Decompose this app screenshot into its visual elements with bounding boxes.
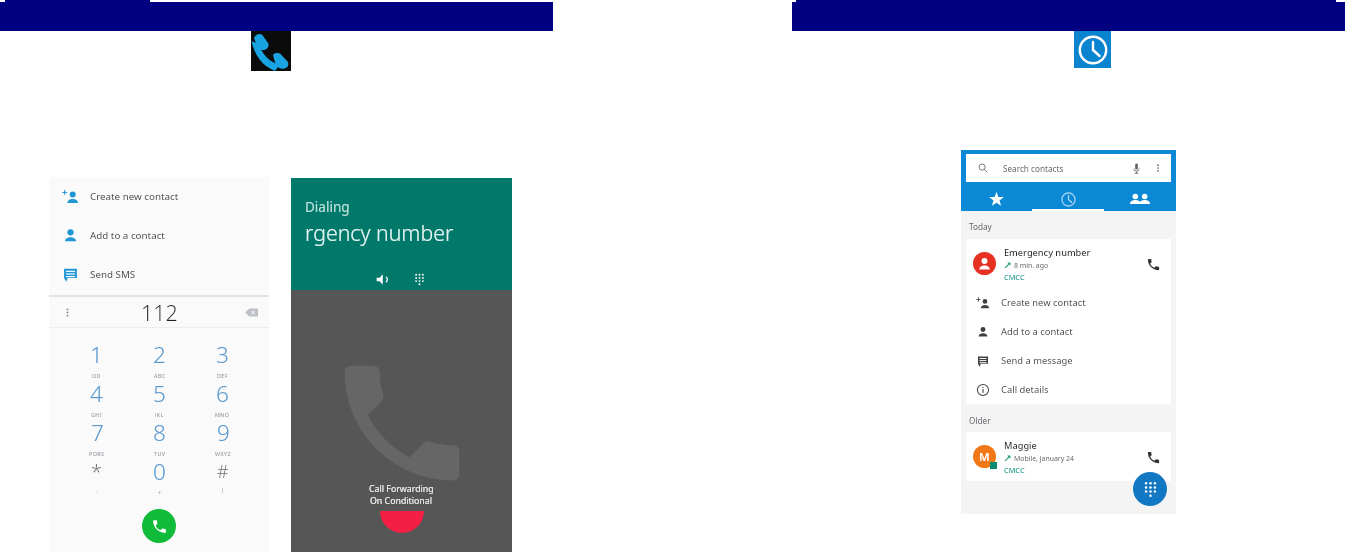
staticText: GHI xyxy=(91,411,102,417)
button[interactable]: 3 xyxy=(191,341,254,380)
staticText: M xyxy=(979,449,990,465)
staticText: Send a message xyxy=(1001,354,1073,367)
button[interactable]: Search contacts xyxy=(966,154,1171,182)
staticText: 2 xyxy=(153,339,166,370)
staticText: 1 xyxy=(90,339,103,370)
staticText: MNO xyxy=(215,411,230,417)
staticText: Call Forwarding xyxy=(369,483,434,495)
staticText: 112 xyxy=(141,298,178,327)
staticText: TUV xyxy=(154,450,166,456)
staticText: Maggie xyxy=(1004,439,1037,452)
staticText: On Conditional xyxy=(370,495,433,507)
staticText: Search contacts xyxy=(1003,163,1131,174)
staticText: Create new contact xyxy=(90,190,179,203)
staticText: Call details xyxy=(1001,383,1049,396)
button[interactable]: Emergency number xyxy=(966,239,1171,288)
button[interactable]: 2 xyxy=(128,341,191,380)
staticText: ABC xyxy=(154,372,166,378)
button[interactable]: 7 xyxy=(65,419,128,458)
button[interactable]: 4 xyxy=(65,380,128,419)
staticText: 9 xyxy=(217,417,230,448)
staticText: Create new contact xyxy=(1001,296,1086,309)
button[interactable]: Speaker xyxy=(371,268,393,290)
staticText: 3 xyxy=(216,339,229,370)
button[interactable]: M xyxy=(966,432,1171,481)
staticText: Add to a contact xyxy=(90,229,165,242)
button[interactable]: 9 xyxy=(191,419,254,458)
button[interactable]: More options xyxy=(49,297,85,327)
staticText: 7 xyxy=(91,417,104,448)
staticText: 0 xyxy=(153,456,166,487)
staticText: rgency number xyxy=(305,218,454,247)
button[interactable]: Open dialpad xyxy=(1133,472,1167,506)
staticText: Emergency number xyxy=(1004,246,1091,259)
staticText: WXYZ xyxy=(215,450,231,456)
button[interactable]: Create new contact xyxy=(966,288,1171,317)
staticText: + xyxy=(158,489,162,495)
button[interactable]: Contacts xyxy=(1104,187,1176,211)
staticText: Older xyxy=(969,415,991,426)
button[interactable]: 0 xyxy=(128,458,191,497)
staticText: | xyxy=(221,486,225,493)
staticText: 5 xyxy=(153,378,166,409)
button[interactable]: Add to a contact xyxy=(49,216,269,255)
staticText: 4 xyxy=(90,378,103,409)
staticText: 8 min. ago xyxy=(1014,261,1049,270)
button[interactable]: Send a message xyxy=(966,346,1171,375)
button[interactable]: End call xyxy=(380,511,424,529)
staticText: # xyxy=(217,459,229,484)
button[interactable]: 1 xyxy=(65,341,128,380)
staticText: DEF xyxy=(217,372,228,378)
button[interactable]: Recents xyxy=(1032,187,1104,211)
staticText: . xyxy=(96,487,98,494)
button[interactable]: 5 xyxy=(128,380,191,419)
staticText: JKL xyxy=(155,411,164,417)
button[interactable]: Call back xyxy=(1139,250,1167,278)
staticText: * xyxy=(91,458,103,485)
button[interactable]: Create new contact xyxy=(49,177,269,216)
staticText: Today xyxy=(969,221,992,232)
button[interactable]: # xyxy=(191,458,254,497)
staticText: Mobile, January 24 xyxy=(1014,454,1074,463)
button[interactable]: 6 xyxy=(191,380,254,419)
button[interactable]: Call xyxy=(142,509,176,543)
staticText: CMCC xyxy=(1004,465,1025,475)
staticText: Send SMS xyxy=(90,268,136,281)
button[interactable]: Send SMS xyxy=(49,255,269,294)
button[interactable]: Favorites xyxy=(961,187,1032,211)
button[interactable]: * xyxy=(65,458,128,497)
staticText: 8 xyxy=(153,417,166,448)
button[interactable]: Call details xyxy=(966,375,1171,404)
button[interactable]: Add to a contact xyxy=(966,317,1171,346)
button[interactable]: Dialpad xyxy=(408,268,430,290)
staticText: QD xyxy=(92,372,101,378)
button[interactable]: Backspace xyxy=(233,297,269,327)
button[interactable]: 8 xyxy=(128,419,191,458)
staticText: Add to a contact xyxy=(1001,325,1073,338)
staticText: 6 xyxy=(216,378,229,409)
staticText: PQRS xyxy=(89,450,105,456)
staticText: Dialing xyxy=(305,198,350,216)
button[interactable]: Call back xyxy=(1139,443,1167,471)
staticText: CMCC xyxy=(1004,272,1025,282)
